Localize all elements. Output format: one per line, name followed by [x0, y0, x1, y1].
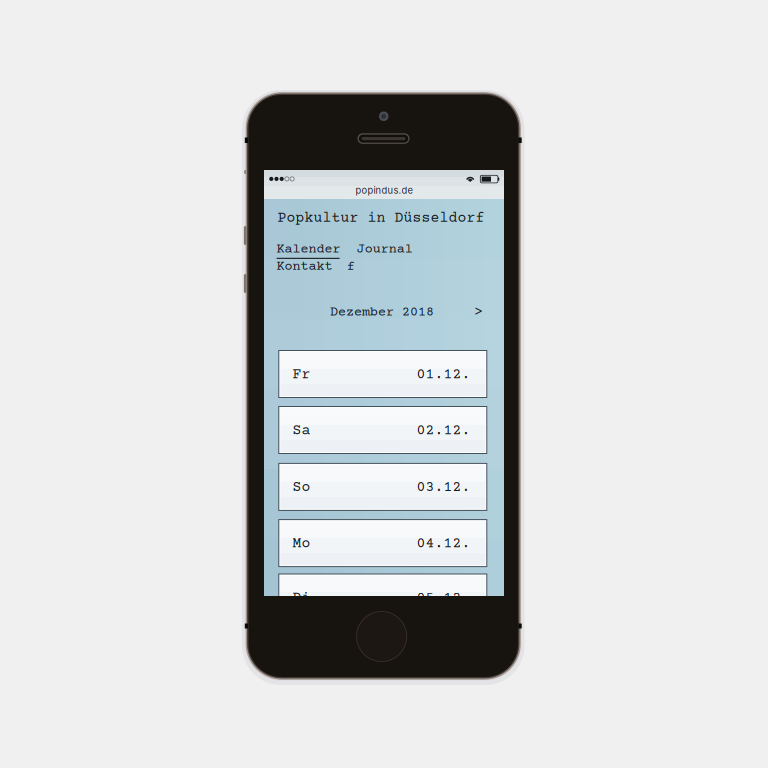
staticText: Kalender	[277, 242, 341, 257]
staticText: 04.12.	[417, 536, 471, 552]
button[interactable]: Di	[278, 573, 487, 621]
staticText: popindus.de	[355, 185, 412, 196]
staticText: Mo	[293, 536, 311, 552]
button[interactable]: Mo	[278, 519, 487, 567]
staticText: 01.12.	[417, 367, 471, 383]
staticText: 03.12.	[417, 480, 471, 496]
button[interactable]: Next month	[468, 303, 488, 321]
button[interactable]: Sa	[278, 406, 487, 454]
button[interactable]: Facebook	[347, 259, 358, 273]
button[interactable]: Kalender	[277, 242, 343, 260]
button[interactable]: So	[278, 463, 487, 511]
staticText: So	[293, 480, 311, 496]
staticText: f	[347, 259, 355, 274]
staticText: >	[474, 304, 483, 321]
staticText: Fr	[293, 367, 311, 383]
button[interactable]: Fr	[278, 350, 487, 398]
staticText: 02.12.	[417, 423, 471, 439]
staticText: 05.12.	[417, 590, 471, 607]
staticText: Dezember 2018	[330, 305, 434, 320]
staticText: Di	[293, 590, 311, 607]
staticText: Sa	[293, 423, 311, 439]
staticText: Popkultur in Düsseldorf	[277, 210, 484, 227]
staticText: Journal	[357, 242, 413, 257]
button[interactable]: Kontakt	[277, 259, 334, 273]
staticText: Kontakt	[277, 259, 333, 274]
button[interactable]: Journal	[357, 242, 414, 256]
